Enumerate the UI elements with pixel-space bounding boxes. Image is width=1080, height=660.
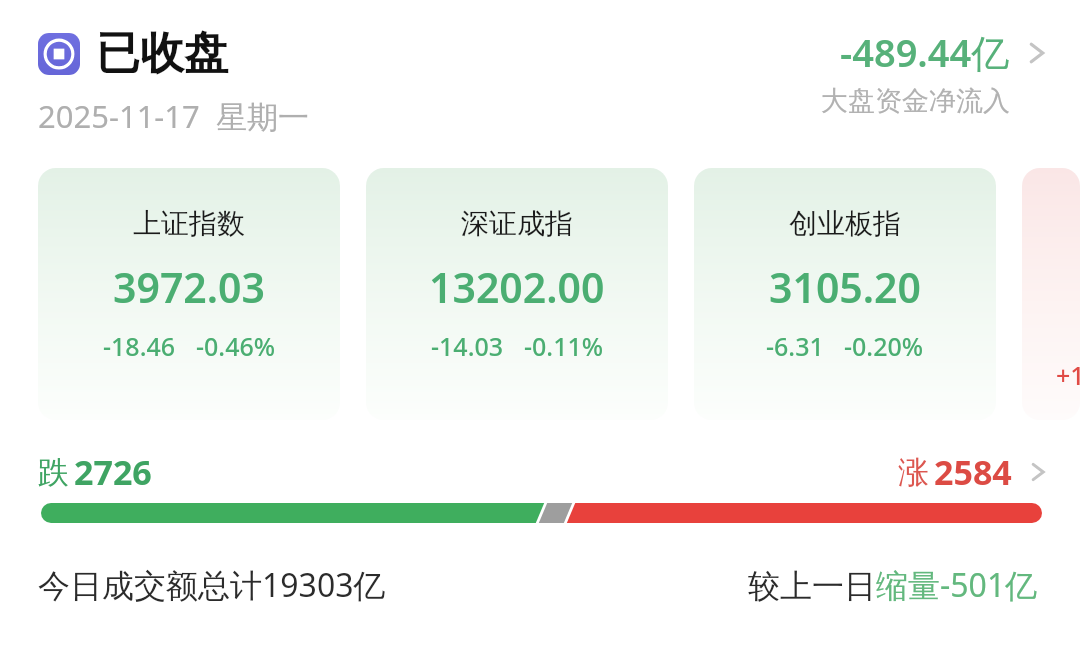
staticText: 今日成交额总计19303亿 — [38, 563, 386, 607]
button[interactable] — [41, 503, 1042, 523]
staticText: 跌 — [38, 453, 69, 492]
staticText: 较上一日缩量-501亿 — [748, 563, 1038, 607]
staticText: 涨 — [898, 453, 929, 492]
staticText: 已收盘 — [96, 26, 228, 81]
staticText: 2584 — [934, 449, 1012, 495]
staticText: 3105.20 — [769, 259, 922, 315]
button[interactable]: +1.2 — [1022, 168, 1080, 420]
staticText: -6.31 — [766, 329, 824, 363]
staticText: 2025-11-17 星期一 — [38, 95, 309, 137]
staticText: 深证成指 — [461, 206, 573, 241]
staticText: -14.03 — [431, 329, 504, 363]
button[interactable]: 跌 — [0, 444, 1080, 500]
staticText: -18.46 — [103, 329, 176, 363]
button[interactable]: 深证成指 — [366, 168, 668, 420]
staticText: 大盘资金净流入 — [821, 84, 1010, 118]
staticText: 2726 — [74, 449, 152, 495]
staticText: 13202.00 — [429, 259, 605, 315]
button[interactable]: -489.44亿 — [821, 26, 1050, 118]
staticText: 上证指数 — [133, 206, 245, 241]
staticText: -0.11% — [524, 329, 604, 363]
staticText: +1.2 — [1056, 358, 1080, 392]
staticText: -0.46% — [196, 329, 276, 363]
staticText: 创业板指 — [789, 206, 901, 241]
staticText: -0.20% — [844, 329, 924, 363]
button[interactable]: 上证指数 — [38, 168, 340, 420]
staticText: 3972.03 — [113, 259, 266, 315]
button[interactable]: 创业板指 — [694, 168, 996, 420]
staticText: -489.44亿 — [840, 26, 1010, 78]
